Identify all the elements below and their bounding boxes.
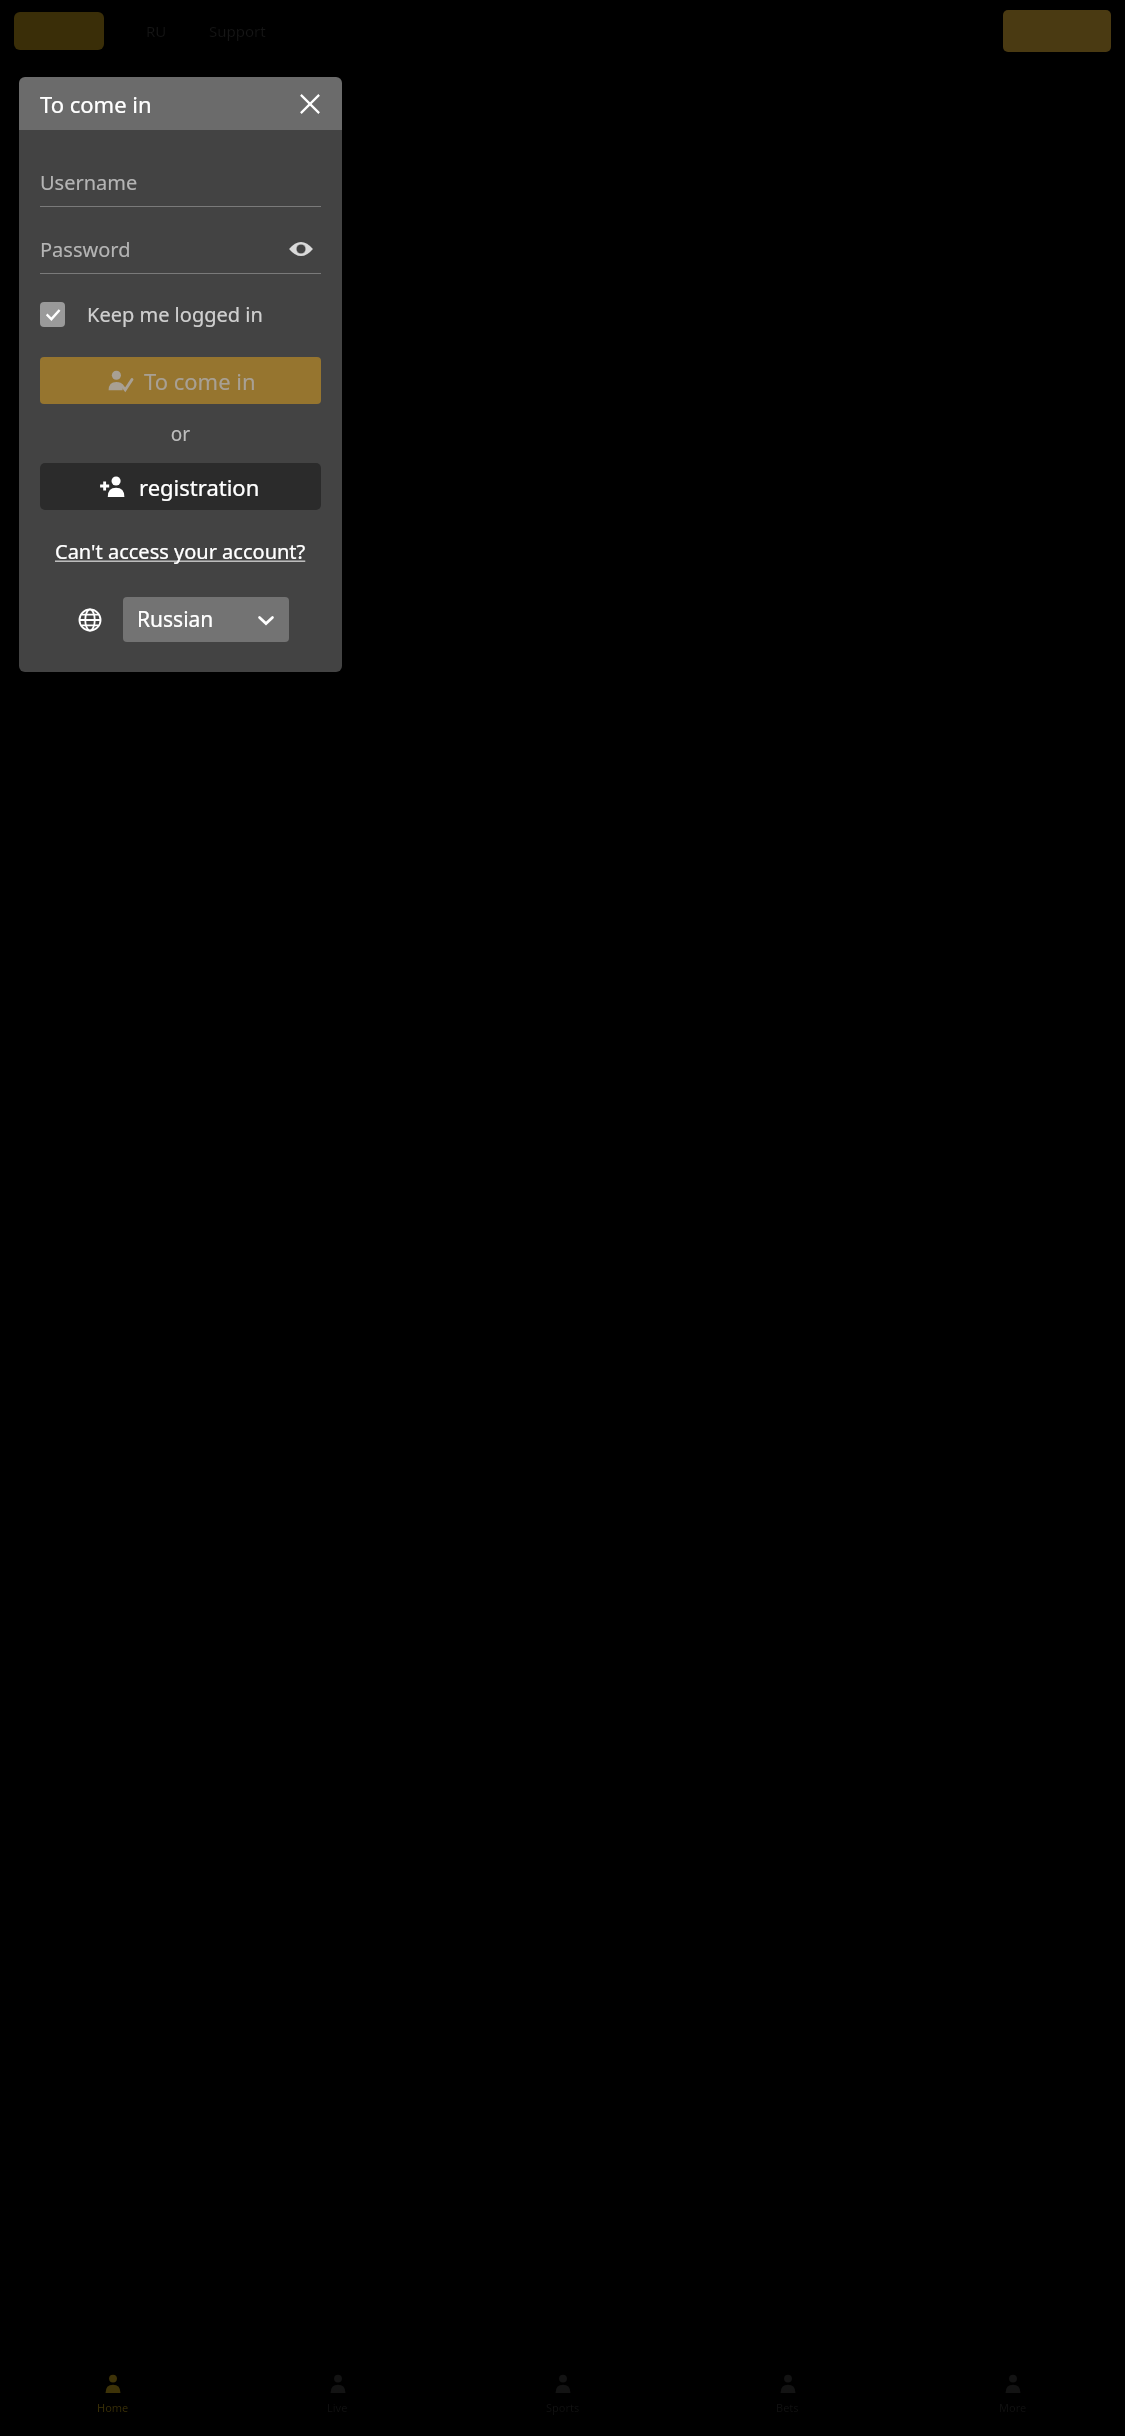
staticText: Username (40, 169, 138, 196)
button[interactable]: registration (40, 463, 321, 510)
button[interactable]: Language (73, 603, 107, 637)
button[interactable]: Close (290, 84, 330, 124)
staticText: Live (327, 2400, 348, 2415)
button[interactable]: Keep me logged in (40, 301, 321, 328)
staticText: Russian (137, 605, 257, 634)
staticText: RU (146, 21, 167, 41)
staticText: Password (40, 236, 131, 263)
staticText: To come in (144, 366, 256, 396)
button[interactable]: Home (0, 2350, 225, 2436)
button[interactable]: To come in (40, 357, 321, 404)
staticText: More (999, 2400, 1027, 2415)
button[interactable]: Password (40, 225, 321, 273)
staticText: To come in (40, 89, 152, 119)
button[interactable]: Logo (14, 12, 104, 50)
staticText: Can't access your account? (55, 538, 306, 565)
staticText: Keep me logged in (87, 301, 263, 328)
button[interactable]: Russian (123, 597, 289, 642)
staticText: Home (97, 2400, 129, 2415)
staticText: Bets (776, 2400, 799, 2415)
button[interactable]: Username (40, 158, 321, 206)
button[interactable] (1003, 10, 1111, 52)
staticText: Support (209, 21, 266, 41)
staticText: or (40, 421, 321, 447)
staticText: registration (139, 472, 260, 502)
staticText: Sports (546, 2400, 580, 2415)
button[interactable]: Can't access your account? (40, 538, 321, 565)
button[interactable]: Show password (281, 229, 321, 269)
